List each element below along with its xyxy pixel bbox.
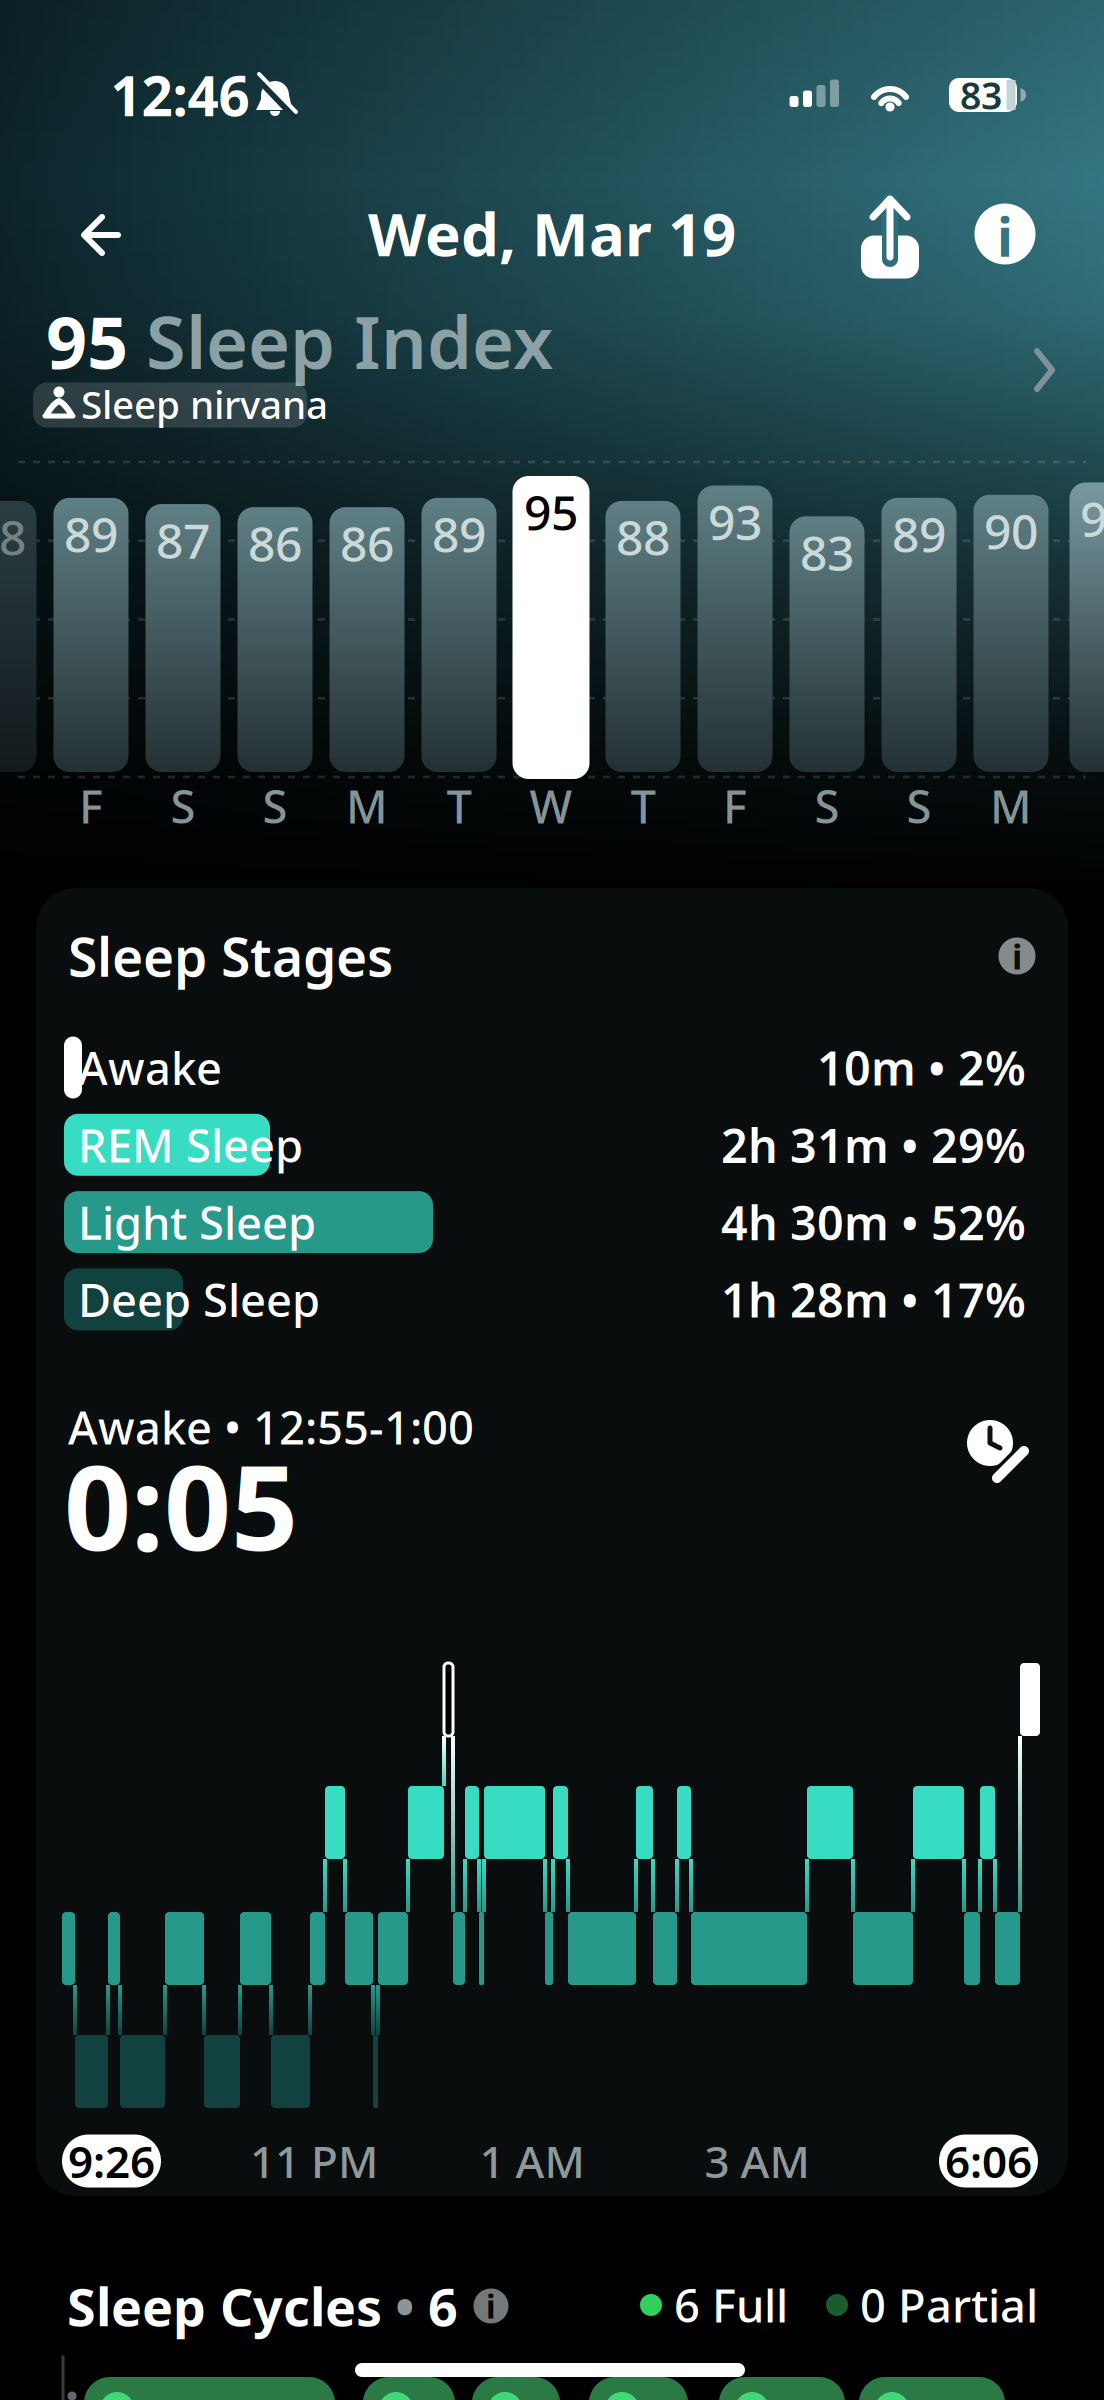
button[interactable]: Sleep index 86	[237, 507, 312, 772]
staticText: 88	[616, 505, 670, 569]
button[interactable]: Sleep stages info	[995, 934, 1039, 978]
staticText: S	[814, 776, 839, 836]
button[interactable]: 95	[0, 275, 1104, 425]
button[interactable]: Sleep index 89	[421, 498, 496, 772]
button[interactable]: Sleep index 83	[789, 516, 864, 772]
staticText: •	[395, 2271, 415, 2341]
button[interactable]: Sleep index 89	[53, 498, 128, 772]
staticText: F	[723, 776, 747, 836]
staticText: M	[990, 776, 1032, 836]
staticText: Sleep Stages	[68, 921, 393, 991]
button[interactable]: Sleep index 95	[512, 476, 589, 779]
staticText: 0 Partial	[860, 2275, 1038, 2335]
staticText: Awake	[78, 1037, 222, 1098]
button[interactable]: Sleep cycle 4	[589, 2377, 688, 2400]
button[interactable]: Sleep cycle 5	[719, 2377, 845, 2400]
staticText: Wed, Mar 19	[368, 193, 736, 273]
staticText: S	[170, 776, 195, 836]
staticText: i	[486, 2285, 496, 2327]
staticText: i	[997, 201, 1013, 271]
staticText: 11 PM	[250, 2132, 378, 2190]
button[interactable]: Edit sleep time	[950, 1408, 1030, 1488]
staticText: Sleep Index	[146, 293, 553, 389]
staticText: 93	[708, 490, 762, 553]
button[interactable]: Sleep index 93	[697, 486, 772, 772]
button[interactable]: Share	[850, 188, 930, 278]
staticText: Sleep nirvana	[81, 378, 328, 430]
staticText: 89	[892, 502, 946, 566]
staticText: 1 AM	[479, 2132, 584, 2190]
staticText: 88	[0, 505, 26, 569]
staticText: 86	[340, 511, 394, 575]
staticText: i	[1012, 933, 1022, 979]
staticText: 4h 30m • 52%	[721, 1191, 1026, 1253]
button[interactable]: Sleep index 87	[145, 504, 220, 772]
button[interactable]: Sleep index 88	[0, 501, 36, 772]
button[interactable]: Sleep index 94	[1069, 482, 1104, 772]
staticText: 6:06	[945, 2132, 1032, 2190]
button[interactable]: Info	[973, 202, 1037, 266]
staticText: 94	[1080, 487, 1104, 550]
button[interactable]: Back	[71, 205, 131, 265]
staticText: 83	[800, 520, 854, 584]
button[interactable]: Sleep cycle 2	[363, 2377, 455, 2400]
staticText: 90	[984, 499, 1038, 563]
staticText: 0:05	[64, 1427, 298, 1583]
staticText: 2h 31m • 29%	[721, 1114, 1026, 1176]
staticText: REM Sleep	[78, 1115, 303, 1175]
staticText: 87	[156, 508, 210, 572]
staticText: Light Sleep	[78, 1192, 316, 1252]
staticText: S	[906, 776, 931, 836]
staticText: 6	[428, 2271, 458, 2341]
staticText: M	[346, 776, 388, 836]
button[interactable]: Sleep index 89	[881, 498, 956, 772]
staticText: 9:26	[68, 2132, 155, 2190]
button[interactable]: Sleep cycle 6	[859, 2377, 1005, 2400]
staticText: S	[262, 776, 287, 836]
staticText: Awake • 12:55-1:00	[68, 1397, 474, 1457]
staticText: 10m • 2%	[817, 1036, 1026, 1098]
staticText: 89	[432, 502, 486, 566]
button[interactable]: Sleep cycle 3	[472, 2377, 560, 2400]
staticText: F	[79, 776, 103, 836]
button[interactable]: Sleep cycle 1	[84, 2377, 335, 2400]
staticText: T	[446, 776, 471, 836]
staticText: 6 Full	[674, 2275, 788, 2335]
button[interactable]: Sleep index 86	[329, 507, 404, 772]
staticText: W	[529, 776, 572, 836]
staticText: 12:46	[110, 59, 249, 131]
button[interactable]: Sleep index 90	[973, 495, 1048, 772]
staticText: 95	[46, 293, 128, 389]
staticText: 3 AM	[704, 2132, 809, 2190]
staticText: 89	[64, 502, 118, 566]
button[interactable]: Sleep index 88	[605, 501, 680, 772]
staticText: 83	[960, 70, 1002, 120]
staticText: Deep Sleep	[78, 1269, 320, 1329]
button[interactable]: Sleep cycles info	[471, 2286, 511, 2326]
staticText: 86	[248, 511, 302, 575]
staticText: 95	[524, 480, 578, 544]
staticText: Sleep Cycles	[67, 2271, 382, 2341]
staticText: T	[630, 776, 655, 836]
staticText: 1h 28m • 17%	[721, 1268, 1026, 1330]
